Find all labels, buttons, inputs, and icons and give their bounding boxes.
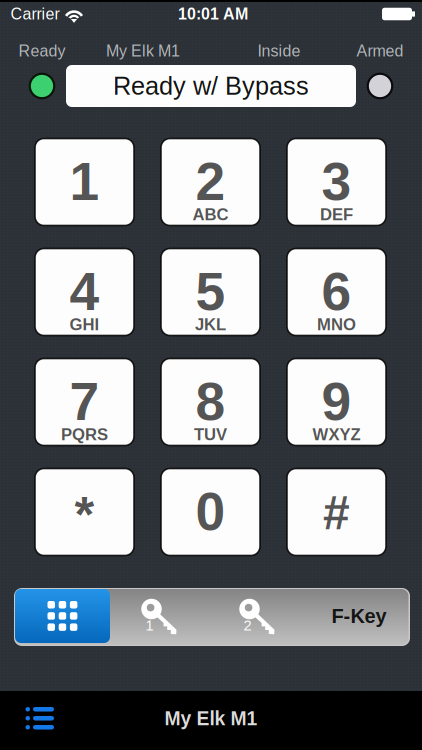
staticText: # [323,486,350,539]
staticText: DEF [320,205,353,224]
staticText: GHI [69,315,99,334]
staticText: WXYZ [312,425,360,444]
button[interactable]: Ready w/ Bypass [66,65,356,107]
staticText: 3 [321,152,351,211]
staticText: Armed [356,42,403,60]
staticText: 8 [195,372,225,431]
staticText: 2 [195,152,225,211]
staticText: My Elk M1 [164,708,257,729]
button[interactable]: 1 [35,138,134,225]
staticText: 1 [145,617,153,634]
staticText: 5 [195,262,225,321]
button[interactable]: # [287,468,386,555]
staticText: 6 [321,262,351,321]
button[interactable]: 9 [287,358,386,445]
button[interactable]: 2 [161,138,260,225]
button[interactable]: 6 [287,248,386,335]
button[interactable]: * [35,468,134,555]
button[interactable]: List [13,695,67,741]
staticText: * [74,486,94,543]
staticText: JKL [195,315,226,334]
staticText: My Elk M1 [106,42,180,60]
button[interactable]: 7 [35,358,134,445]
button[interactable]: 0 [161,468,260,555]
staticText: MNO [317,315,356,334]
staticText: 1 [69,152,99,211]
staticText: ABC [192,205,228,224]
button[interactable]: 3 [287,138,386,225]
staticText: Inside [257,42,300,60]
staticText: 7 [69,372,99,431]
staticText: 4 [69,262,99,321]
button[interactable]: Key 2 [210,591,308,645]
staticText: 10:01 AM [178,5,248,23]
staticText: 9 [321,372,351,431]
button[interactable]: 5 [161,248,260,335]
button[interactable]: 4 [35,248,134,335]
staticText: Ready w/ Bypass [113,72,309,100]
button[interactable]: 8 [161,358,260,445]
staticText: Carrier [10,5,59,23]
staticText: 2 [243,617,251,634]
staticText: Ready [18,42,65,60]
staticText: 0 [195,482,225,541]
button[interactable]: Key 1 [112,591,210,645]
staticText: PQRS [61,425,108,444]
button[interactable]: Keypad [15,589,110,643]
staticText: F-Key [331,605,386,627]
button[interactable]: F-Key [309,589,408,643]
staticText: TUV [194,425,227,444]
